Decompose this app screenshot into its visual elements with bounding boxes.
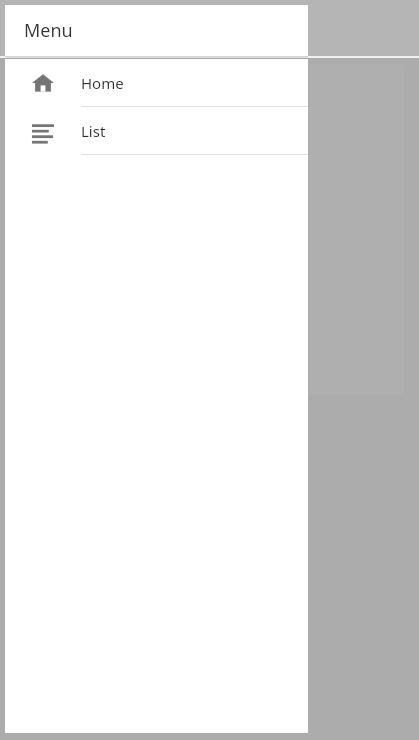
staticText: List xyxy=(81,121,106,141)
button[interactable]: List xyxy=(5,107,308,155)
other: Home xyxy=(31,71,55,95)
staticText: Home xyxy=(81,73,124,93)
button[interactable]: Home xyxy=(5,59,308,107)
other: List xyxy=(31,119,55,143)
staticText: Menu xyxy=(24,18,73,43)
